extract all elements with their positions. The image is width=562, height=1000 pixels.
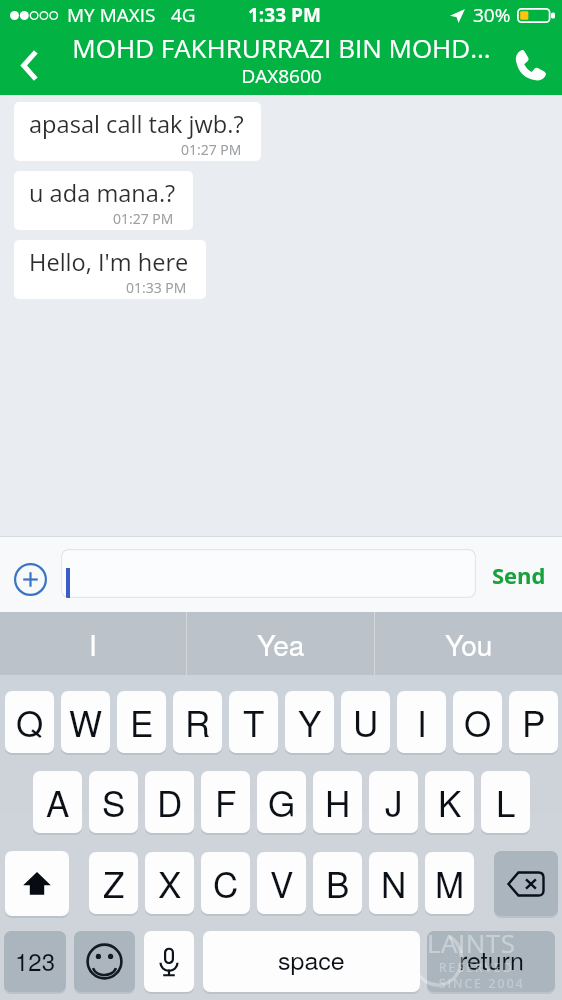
staticText: K [438,777,462,827]
staticText: return [459,941,524,977]
staticText: I [89,624,97,664]
staticText: space [278,941,345,977]
button[interactable]: 123 [4,931,66,994]
staticText: RESERVED [439,959,514,975]
staticText: G [268,777,296,827]
staticText: A [46,777,70,827]
staticText: J [385,777,403,827]
button[interactable]: I [397,691,446,755]
staticText: C [213,858,239,908]
button[interactable]: Emoji [74,931,135,994]
staticText: apasal call tak jwb.? [29,108,244,140]
button[interactable]: A [33,771,82,835]
button[interactable]: U [341,691,390,755]
staticText: Y [298,697,322,747]
button[interactable] [61,549,476,598]
button[interactable]: Backspace [494,851,558,918]
button[interactable]: V [257,852,306,916]
button[interactable]: space [203,931,420,994]
button[interactable]: W [61,691,110,755]
staticText: W [69,697,103,747]
button[interactable]: R [173,691,222,755]
button[interactable]: apasal call tak jwb.? [14,102,261,161]
staticText: H [325,777,351,827]
staticText: 1:33 PM [248,2,321,28]
staticText: 30% [473,2,511,28]
button[interactable]: E [117,691,166,755]
button[interactable]: P [509,691,558,755]
button[interactable]: return [427,931,555,994]
staticText: L [496,777,516,827]
button[interactable]: D [145,771,194,835]
staticText: 4G [171,2,196,28]
button[interactable]: X [145,852,194,916]
button[interactable]: L [481,771,530,835]
button[interactable]: N [369,852,418,916]
staticText: U [353,697,379,747]
button[interactable]: H [313,771,362,835]
staticText: B [326,858,350,908]
staticText: X [158,858,182,908]
staticText: Q [16,697,44,747]
button[interactable]: Add attachment [14,563,47,596]
button[interactable]: S [89,771,138,835]
staticText: You [445,624,493,664]
staticText: LAINTS [427,925,516,960]
staticText: E [130,697,154,747]
button[interactable]: I [0,612,186,676]
button[interactable]: B [313,852,362,916]
staticText: N [381,858,407,908]
staticText: 01:27 PM [181,140,242,159]
button[interactable]: T [229,691,278,755]
staticText: DAX8600 [241,63,322,89]
staticText: M [435,858,465,908]
staticText: D [157,777,183,827]
staticText: R [185,697,211,747]
staticText: O [464,697,492,747]
button[interactable]: Voice input [144,931,194,994]
staticText: I [417,697,427,747]
staticText: F [215,777,237,827]
button[interactable]: Y [285,691,334,755]
button[interactable]: Yea [187,612,374,676]
staticText: 123 [15,943,56,977]
button[interactable]: Call [504,40,556,92]
staticText: S [102,777,126,827]
staticText: P [522,697,546,747]
staticText: Send [492,560,546,590]
button[interactable]: Z [89,852,138,916]
button[interactable]: You [375,612,562,676]
staticText: V [270,858,294,908]
button[interactable]: Back [4,40,54,90]
staticText: SINCE 2004 [439,975,525,991]
button[interactable]: Send [476,536,562,614]
button[interactable]: F [201,771,250,835]
button[interactable]: M [425,852,474,916]
button[interactable]: C [201,852,250,916]
button[interactable]: Hello, I'm here [14,240,206,299]
button[interactable]: Q [5,691,54,755]
staticText: T [243,697,265,747]
staticText: 01:33 PM [126,278,187,297]
button[interactable]: K [425,771,474,835]
button[interactable]: O [453,691,502,755]
staticText: MY MAXIS [67,2,156,28]
button[interactable]: Shift [5,851,69,918]
staticText: Yea [257,624,305,664]
staticText: 01:27 PM [113,209,174,228]
staticText: Hello, I'm here [29,246,189,278]
staticText: MOHD FAKHRURRAZI BIN MOHD... [72,30,491,65]
button[interactable]: J [369,771,418,835]
staticText: u ada mana.? [29,177,176,209]
button[interactable]: G [257,771,306,835]
staticText: Z [103,858,125,908]
button[interactable]: u ada mana.? [14,171,193,230]
